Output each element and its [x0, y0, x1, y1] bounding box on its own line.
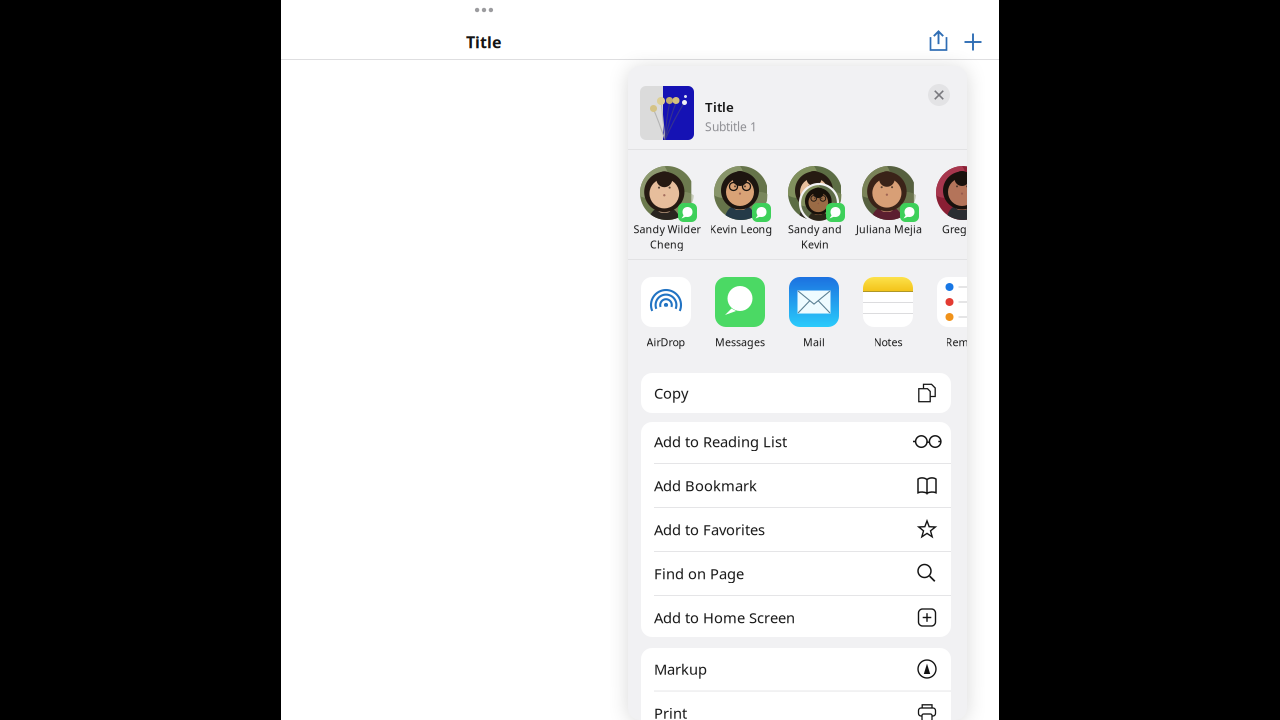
staticText: Greg Ap	[942, 222, 984, 236]
button[interactable]: Add	[955, 24, 991, 60]
button[interactable]: Print	[641, 691, 951, 720]
button[interactable]: Juliana Mejia	[852, 166, 926, 266]
button[interactable]: Add Bookmark	[641, 464, 951, 507]
button[interactable]: Sandy and	[778, 166, 852, 266]
staticText: Add Bookmark	[654, 476, 757, 495]
button[interactable]: Sandy Wilder	[630, 166, 704, 266]
button[interactable]: Messages	[703, 277, 777, 357]
staticText: Title	[705, 98, 734, 116]
button[interactable]: Notes	[851, 277, 925, 357]
button[interactable]: Add to Favorites	[641, 508, 951, 551]
staticText: Add to Home Screen	[654, 608, 795, 627]
staticText: Notes	[873, 335, 902, 349]
staticText: Markup	[654, 659, 707, 679]
staticText: Messages	[715, 335, 765, 349]
staticText: Subtitle 1	[705, 119, 757, 135]
staticText: Remin	[945, 335, 978, 349]
staticText: Juliana Mejia	[856, 222, 922, 236]
staticText: Find on Page	[654, 564, 744, 583]
button[interactable]: Close	[923, 79, 955, 111]
staticText: Cheng	[650, 237, 684, 251]
staticText: AirDrop	[646, 335, 685, 349]
staticText: Add to Favorites	[654, 520, 765, 539]
button[interactable]: Remin	[925, 277, 999, 357]
staticText: Copy	[654, 383, 688, 403]
button[interactable]: Add to Home Screen	[641, 596, 951, 639]
staticText: Print	[654, 703, 687, 720]
staticText: Kevin	[801, 237, 829, 251]
button[interactable]: Greg Ap	[926, 166, 1000, 266]
staticText: Add to Reading List	[654, 432, 787, 451]
button[interactable]: Kevin Leong	[704, 166, 778, 266]
button[interactable]: Add to Reading List	[641, 420, 951, 463]
button[interactable]: Markup	[641, 647, 951, 690]
button[interactable]: AirDrop	[629, 277, 703, 357]
button[interactable]: Mail	[777, 277, 851, 357]
button[interactable]: Share	[920, 23, 956, 59]
button[interactable]: Copy	[641, 373, 951, 413]
staticText: Sandy Wilder	[633, 222, 700, 236]
staticText: Sandy and	[788, 222, 842, 236]
button[interactable]: Find on Page	[641, 552, 951, 595]
staticText: Mail	[803, 335, 825, 349]
staticText: Kevin Leong	[709, 222, 772, 236]
staticText: Title	[466, 31, 502, 53]
